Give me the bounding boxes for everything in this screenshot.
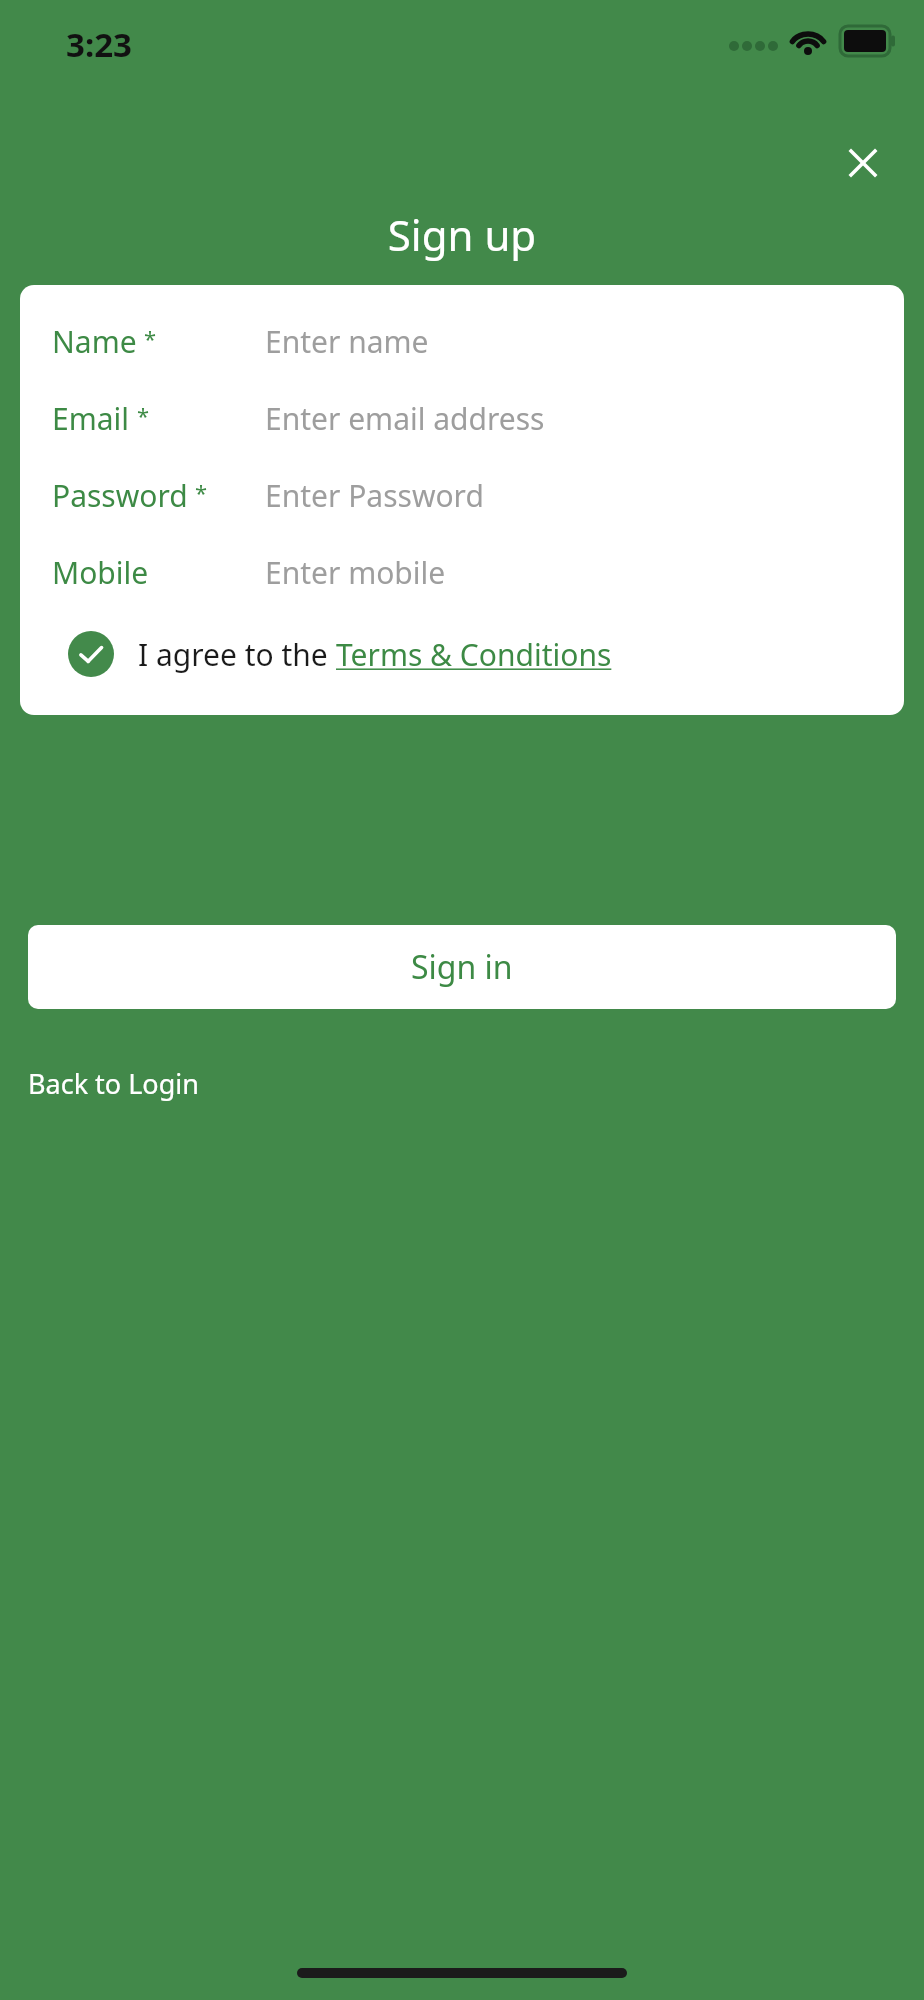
staticText: Enter mobile [265,552,446,593]
staticText: Password [52,475,188,516]
button[interactable]: Sign in [28,925,896,1009]
button[interactable]: Email [20,380,904,457]
staticText: Enter Password [265,475,484,516]
staticText: * [137,400,150,430]
staticText: Name [52,321,137,362]
staticText: Email [52,398,130,439]
staticText: * [144,323,157,353]
staticText: I agree to the [138,634,336,675]
button[interactable]: Back to Login [28,1055,199,1112]
button[interactable]: I agree to the [20,617,904,691]
staticText: Mobile [52,552,149,593]
staticText: Enter email address [265,398,545,439]
button[interactable]: Name [20,303,904,380]
button[interactable]: Mobile [20,534,904,611]
staticText: Enter name [265,321,429,362]
staticText: Back to Login [28,1065,199,1102]
staticText: Sign up [0,206,924,263]
staticText: Sign in [411,945,513,989]
staticText: * [195,477,208,507]
staticText: 3:23 [66,22,132,67]
button[interactable]: Password [20,457,904,534]
button[interactable]: Close [833,133,893,193]
button[interactable]: Terms & Conditions [336,634,612,675]
